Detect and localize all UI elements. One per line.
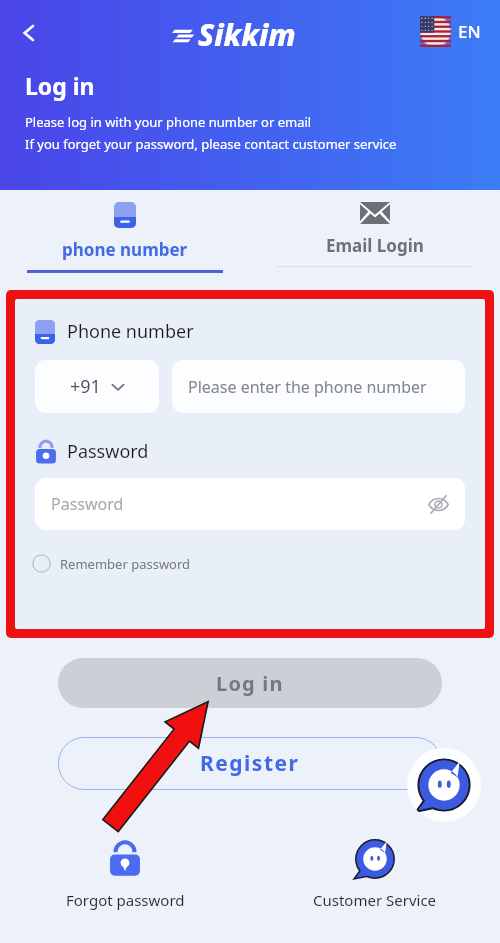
button[interactable]: Remember password [28,550,195,577]
staticText: EN [458,20,481,43]
staticText: Password [67,439,149,464]
button[interactable]: Please enter the phone number [172,360,465,413]
staticText: Please log in with your phone number or … [25,113,312,131]
button[interactable]: Forgot password [0,828,250,928]
button[interactable]: Show password [423,489,453,519]
staticText: Email Login [326,234,424,257]
staticText: If you forget your password, please cont… [25,135,397,153]
staticText: Customer Service [313,890,437,910]
staticText: Log in [25,70,95,101]
staticText: Remember password [60,555,191,573]
staticText: +91 [70,374,101,399]
button[interactable]: Password [35,478,465,530]
button[interactable]: Back [8,12,50,54]
staticText: Password [51,493,124,515]
button[interactable]: phone number [0,190,250,285]
button[interactable]: EN [418,14,483,49]
staticText: Register [200,749,300,778]
button[interactable]: Email Login [250,190,500,285]
staticText: phone number [62,238,188,261]
staticText: Log in [216,670,284,697]
button[interactable]: Customer service chat [407,748,481,822]
button[interactable]: Customer Service [250,828,500,928]
button[interactable]: Register [58,737,442,790]
staticText: Forgot password [66,890,185,910]
button[interactable]: Log in [58,658,442,708]
staticText: Sikkim [198,14,296,55]
staticText: Phone number [67,319,194,344]
button[interactable]: +91 [35,360,159,413]
staticText: Please enter the phone number [188,376,427,398]
